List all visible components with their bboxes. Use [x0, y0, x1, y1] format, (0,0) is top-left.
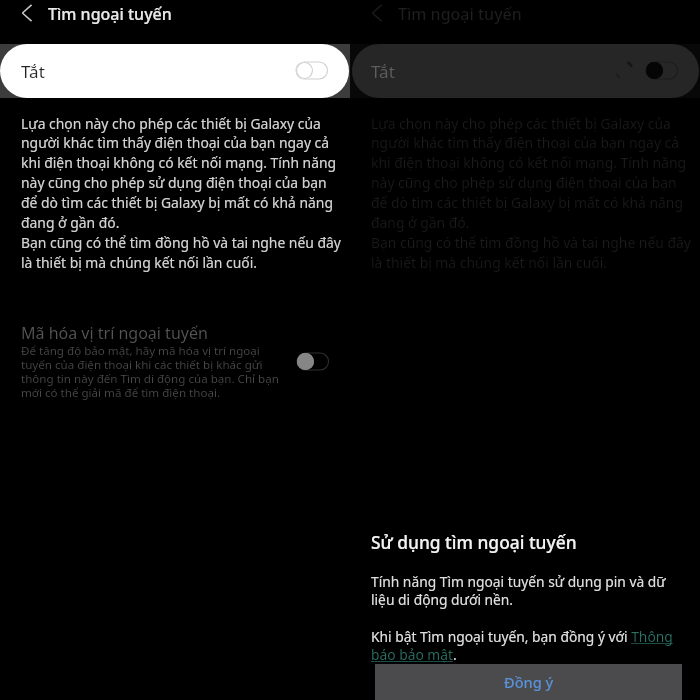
staticText: Lựa chọn này cho phép các thiết bị Galax… [371, 114, 691, 273]
staticText: Tính năng Tìm ngoại tuyến sử dụng pin và… [371, 572, 666, 609]
button[interactable]: Toggle switch [295, 61, 329, 80]
staticText: Tắt [371, 60, 395, 83]
button[interactable] [0, 44, 349, 98]
button[interactable]: Toggle switch [645, 61, 679, 80]
staticText: Để tăng độ bảo mật, hãy mã hóa vị trí ng… [21, 343, 279, 400]
staticText: Tắt [21, 60, 45, 83]
other: Loading [614, 60, 634, 80]
staticText: Tìm ngoại tuyến [398, 3, 522, 25]
button[interactable]: Toggle switch [296, 352, 330, 371]
button[interactable]: Back [363, 0, 391, 27]
staticText: Khi bật Tìm ngoại tuyến, bạn đồng ý với … [371, 627, 673, 664]
staticText: Tìm ngoại tuyến [48, 3, 172, 25]
staticText: Sử dụng tìm ngoại tuyến [371, 530, 577, 554]
staticText: Mã hóa vị trí ngoại tuyến [21, 322, 208, 344]
staticText: Đồng ý [504, 672, 554, 692]
button[interactable]: Đồng ý [375, 664, 682, 700]
button[interactable]: Back [13, 0, 41, 27]
button[interactable] [352, 44, 699, 98]
staticText: Lựa chọn này cho phép các thiết bị Galax… [21, 114, 341, 273]
